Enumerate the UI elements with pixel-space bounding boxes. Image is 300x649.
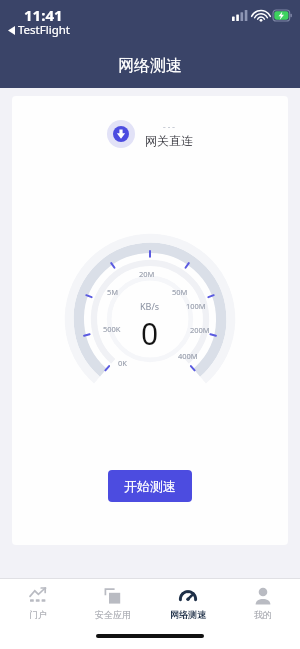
staticText: 20M bbox=[139, 269, 155, 279]
staticText: 50M bbox=[172, 287, 188, 297]
staticText: 开始测速 bbox=[124, 478, 176, 494]
staticText: 5M bbox=[107, 287, 119, 297]
staticText: 200M bbox=[190, 325, 210, 335]
staticText: 网络测速 bbox=[0, 56, 300, 76]
staticText: 网络测速 bbox=[170, 609, 206, 620]
staticText: 我的 bbox=[254, 609, 272, 620]
button[interactable]: 开始测速 bbox=[108, 470, 192, 502]
staticText: 网关直连 bbox=[145, 133, 193, 148]
staticText: 11:41 bbox=[24, 5, 63, 25]
staticText: 安全应用 bbox=[95, 609, 131, 620]
staticText: 100M bbox=[186, 301, 206, 311]
staticText: 门户 bbox=[29, 609, 47, 620]
button[interactable]: 我的 bbox=[225, 579, 300, 627]
staticText: TestFlight bbox=[18, 22, 70, 38]
button[interactable]: Download bbox=[107, 120, 135, 148]
staticText: - - - bbox=[163, 121, 175, 132]
button[interactable]: 安全应用 bbox=[75, 579, 150, 627]
button[interactable]: 门户 bbox=[0, 579, 75, 627]
staticText: KB/s bbox=[140, 300, 160, 312]
staticText: 0K bbox=[118, 358, 127, 368]
staticText: 0 bbox=[141, 313, 159, 354]
staticText: 400M bbox=[178, 351, 198, 361]
staticText: 500K bbox=[103, 324, 121, 334]
button[interactable]: 网络测速 bbox=[150, 579, 225, 627]
